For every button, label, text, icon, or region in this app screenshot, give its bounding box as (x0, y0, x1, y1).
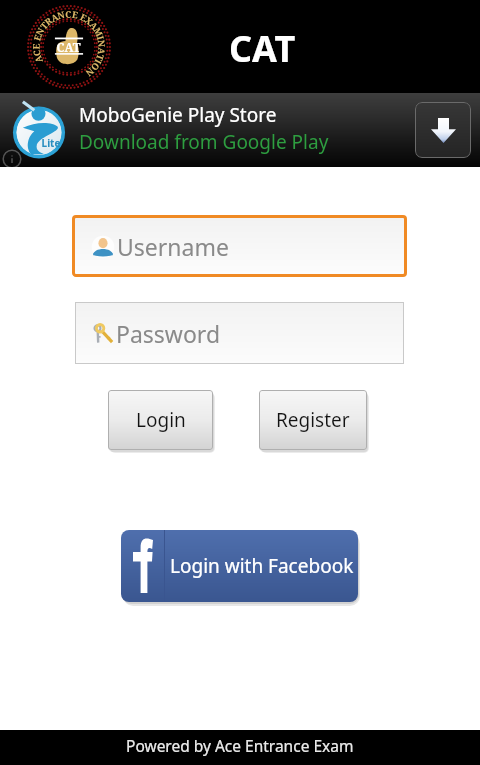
staticText: Login with Facebook (170, 553, 354, 579)
staticText: Powered by Ace Entrance Exam (126, 735, 354, 756)
staticText: Login (136, 407, 186, 433)
staticText: CAT (229, 24, 296, 73)
button[interactable]: Register (259, 390, 367, 450)
button[interactable]: Login (108, 390, 213, 450)
button[interactable]: Username (75, 218, 404, 274)
button[interactable]: MoboGenie Play Store (0, 93, 480, 167)
other: Ace Entrance Examination logo (27, 5, 111, 89)
staticText: Register (276, 407, 350, 433)
staticText: Username (117, 231, 229, 262)
staticText: Download from Google Play (79, 129, 329, 155)
button[interactable]: Download (415, 102, 471, 158)
other: Ad info (1, 148, 23, 170)
button[interactable]: Login with Facebook (121, 530, 358, 602)
staticText: Password (116, 318, 221, 349)
staticText: MoboGenie Play Store (79, 102, 277, 128)
button[interactable]: Password (75, 302, 404, 364)
